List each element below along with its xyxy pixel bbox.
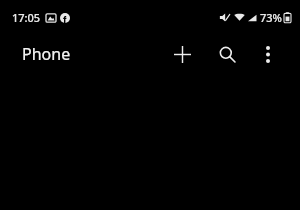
- button[interactable]: Add: [162, 34, 202, 74]
- staticText: Phone: [22, 43, 71, 65]
- button[interactable]: More options: [248, 34, 288, 74]
- staticText: 73%: [260, 10, 282, 25]
- button[interactable]: Phone: [22, 43, 71, 65]
- staticText: 17:05: [12, 10, 41, 25]
- button[interactable]: Search: [207, 34, 247, 74]
